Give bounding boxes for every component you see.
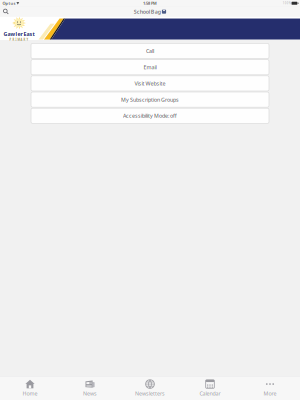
staticText: Visit Website: [134, 80, 165, 87]
button[interactable]: News: [60, 376, 120, 400]
staticText: Email: [143, 64, 156, 71]
staticText: Calendar: [199, 390, 220, 397]
button[interactable]: Search: [0, 7, 11, 17]
staticText: P R I M A R Y: [9, 38, 28, 41]
button[interactable]: Email: [31, 60, 269, 75]
staticText: SchoolBag: [134, 8, 161, 15]
staticText: Newsletters: [135, 390, 165, 397]
staticText: News: [83, 390, 97, 397]
staticText: 100%: [283, 1, 291, 5]
staticText: Home: [22, 390, 37, 397]
staticText: 1:58 PM: [143, 1, 157, 6]
staticText: Optus: [2, 1, 15, 6]
button[interactable]: Visit Website: [31, 76, 269, 91]
staticText: Gawler East: [3, 30, 34, 37]
staticText: My Subscription Groups: [121, 96, 179, 103]
button[interactable]: Home: [0, 376, 60, 400]
button[interactable]: My Subscription Groups: [31, 92, 269, 107]
button[interactable]: Accessibility Mode: off: [31, 108, 269, 123]
staticText: More: [263, 390, 276, 397]
button[interactable]: Calendar: [180, 376, 240, 400]
button[interactable]: Newsletters: [120, 376, 180, 400]
button[interactable]: Call: [31, 43, 269, 59]
staticText: Call: [146, 47, 154, 55]
button[interactable]: More: [240, 376, 300, 400]
staticText: Accessibility Mode: off: [123, 112, 177, 119]
